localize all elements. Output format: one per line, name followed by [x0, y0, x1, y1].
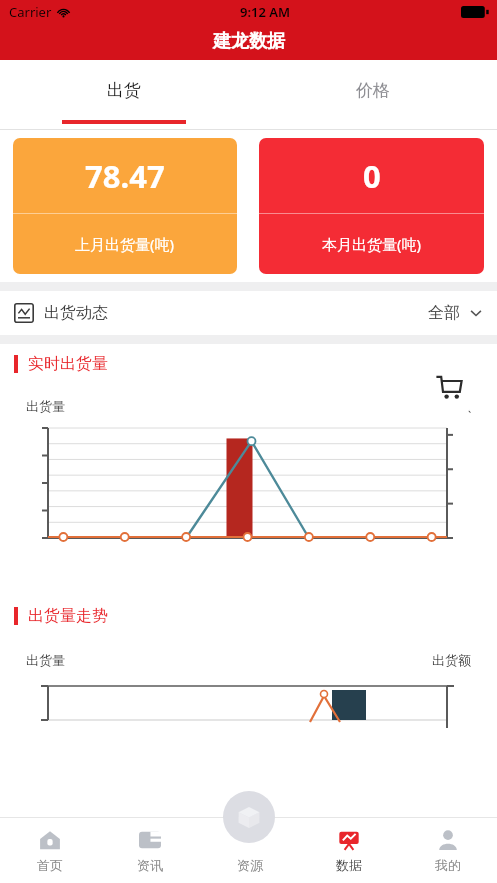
- button[interactable]: 我的: [398, 817, 497, 883]
- button[interactable]: 资源: [223, 791, 275, 843]
- button[interactable]: Shopping cart: [418, 356, 480, 418]
- staticText: 上月出货量(吨): [75, 234, 175, 254]
- button[interactable]: 首页: [0, 817, 100, 883]
- button[interactable]: 0: [259, 138, 484, 274]
- staticText: 我的: [435, 857, 461, 873]
- staticText: 建龙数据: [213, 30, 285, 53]
- staticText: 价格: [356, 80, 390, 101]
- staticText: 全部: [428, 303, 460, 323]
- staticText: 本月出货量(吨): [322, 234, 422, 254]
- button[interactable]: 资讯: [100, 817, 200, 883]
- staticText: 出货额: [432, 398, 471, 414]
- staticText: Carrier: [9, 3, 52, 21]
- staticText: 资源: [237, 857, 263, 873]
- staticText: 9:12 AM: [240, 3, 291, 21]
- staticText: 首页: [37, 857, 63, 873]
- staticText: 实时出货量: [28, 354, 108, 374]
- button[interactable]: 全部: [428, 303, 483, 323]
- staticText: 出货动态: [44, 303, 108, 323]
- staticText: 资讯: [137, 857, 163, 873]
- staticText: 出货量走势: [28, 606, 108, 626]
- button[interactable]: 价格: [248, 60, 497, 130]
- staticText: 数据: [336, 857, 362, 873]
- button[interactable]: 数据: [299, 817, 398, 883]
- staticText: 0: [363, 155, 381, 197]
- staticText: 78.47: [85, 155, 165, 197]
- button[interactable]: 出货: [0, 60, 248, 130]
- staticText: 出货量: [26, 652, 65, 668]
- staticText: 出货量: [26, 398, 65, 414]
- button[interactable]: 资源: [200, 817, 299, 883]
- button[interactable]: 78.47: [13, 138, 237, 274]
- staticText: 出货额: [432, 652, 471, 668]
- staticText: 出货: [107, 80, 141, 101]
